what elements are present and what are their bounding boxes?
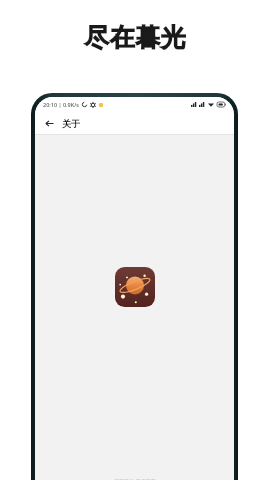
button[interactable]: 返回 [42, 116, 57, 131]
button[interactable]: 应用图标 [115, 267, 155, 307]
staticText: 尽在暮光 [84, 22, 186, 53]
staticText: 20:10 | 0.9K/s [43, 101, 80, 108]
staticText: 关于 [62, 118, 80, 129]
staticText: 尽在暮光 版权所有 [114, 478, 156, 480]
